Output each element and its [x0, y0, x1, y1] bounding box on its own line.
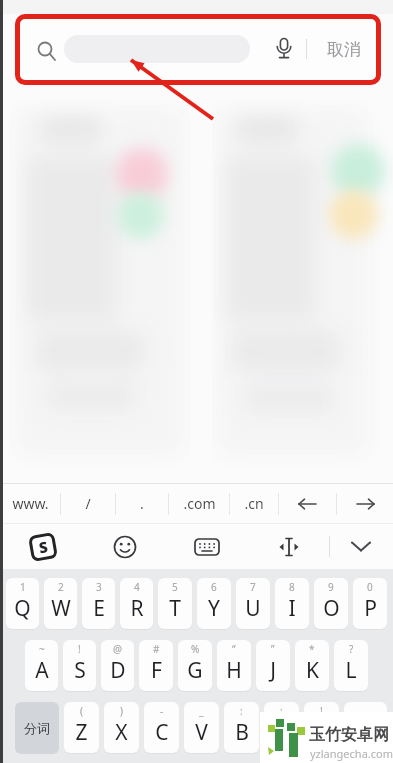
staticText: 4 [134, 580, 140, 594]
staticText: ( [80, 704, 83, 718]
staticText: G [187, 656, 203, 685]
staticText: _ [199, 704, 204, 718]
button[interactable]: / [61, 484, 115, 523]
staticText: O [323, 594, 340, 623]
button[interactable] [64, 35, 250, 63]
staticText: X [115, 718, 128, 747]
button[interactable]: ” [256, 640, 290, 691]
staticText: V [195, 718, 208, 747]
button[interactable]: 取消 [318, 34, 370, 64]
staticText: .com [183, 494, 216, 513]
staticText: Q [14, 594, 31, 623]
staticText: “ [232, 642, 236, 656]
staticText: # [153, 642, 160, 656]
button[interactable]: “ [217, 640, 251, 691]
staticText: 5 [172, 580, 178, 594]
staticText: I [288, 594, 296, 623]
button[interactable] [279, 484, 336, 523]
button[interactable]: 分词 [15, 702, 59, 754]
staticText: 分词 [24, 720, 50, 736]
button[interactable]: - [144, 702, 179, 753]
staticText: A [35, 656, 49, 685]
button[interactable]: 3 [82, 578, 115, 629]
button[interactable]: _ [184, 702, 219, 753]
button[interactable]: 0 [353, 578, 387, 629]
staticText: .cn [244, 494, 264, 513]
button[interactable]: S [28, 532, 58, 562]
button[interactable] [273, 37, 295, 59]
staticText: : [240, 704, 243, 718]
staticText: W [51, 594, 71, 623]
button[interactable] [194, 538, 220, 556]
button[interactable] [113, 535, 137, 559]
staticText: * [309, 642, 315, 656]
button[interactable]: ( [64, 702, 99, 753]
staticText: L [345, 656, 357, 685]
staticText: 取消 [327, 39, 361, 60]
button[interactable]: % [178, 640, 212, 691]
button[interactable]: ! [63, 640, 96, 691]
button[interactable] [278, 537, 300, 557]
button[interactable] [350, 540, 372, 553]
staticText: S [37, 536, 50, 558]
button[interactable] [15, 14, 381, 85]
button[interactable]: * [295, 640, 329, 691]
staticText: - [160, 704, 164, 718]
staticText: 7 [250, 580, 256, 594]
staticText: T [169, 594, 181, 623]
staticText: 3 [96, 580, 102, 594]
staticText: 0 [367, 580, 373, 594]
staticText: ~ [39, 642, 45, 656]
staticText: 6 [211, 580, 217, 594]
button[interactable]: ⌫ [344, 702, 387, 753]
button[interactable]: 4 [120, 578, 153, 629]
staticText: yzlangecha.com [310, 746, 393, 761]
button[interactable] [337, 484, 393, 523]
button[interactable]: www. [0, 484, 60, 523]
staticText: S [74, 656, 86, 685]
staticText: ” [271, 642, 275, 656]
button[interactable]: 7 [236, 578, 270, 629]
button[interactable]: 9 [314, 578, 348, 629]
staticText: M [312, 718, 332, 747]
button[interactable]: 8 [275, 578, 309, 629]
staticText: ! [78, 642, 81, 656]
staticText: ; [280, 704, 283, 718]
button[interactable]: ? [334, 640, 368, 691]
staticText: 9 [328, 580, 334, 594]
staticText: . [140, 494, 144, 513]
staticText: D [110, 656, 126, 685]
staticText: K [306, 656, 319, 685]
button[interactable]: ) [104, 702, 139, 753]
staticText: C [155, 718, 169, 747]
button[interactable]: . [116, 484, 168, 523]
staticText: ⌫ [354, 718, 377, 737]
staticText: F [151, 656, 162, 685]
staticText: ) [120, 704, 123, 718]
button[interactable]: ! [304, 702, 339, 753]
button[interactable]: 6 [197, 578, 231, 629]
button[interactable]: @ [101, 640, 134, 691]
staticText: N [274, 718, 290, 747]
button[interactable]: ; [264, 702, 299, 753]
button[interactable]: 2 [44, 578, 77, 629]
staticText: 玉竹安卓网 [309, 725, 389, 745]
staticText: Y [208, 594, 220, 623]
button[interactable]: .cn [230, 484, 278, 523]
staticText: ! [320, 704, 323, 718]
button[interactable]: ~ [25, 640, 58, 691]
staticText: J [270, 656, 276, 685]
staticText: 1 [20, 580, 26, 594]
button[interactable]: 5 [158, 578, 192, 629]
staticText: U [245, 594, 261, 623]
button[interactable]: .com [169, 484, 229, 523]
staticText: www. [12, 494, 49, 513]
staticText: E [93, 594, 105, 623]
button[interactable]: # [139, 640, 173, 691]
staticText: Z [75, 718, 88, 747]
staticText: P [364, 594, 377, 623]
button[interactable]: : [224, 702, 259, 753]
staticText: R [130, 594, 144, 623]
button[interactable]: 1 [6, 578, 39, 629]
staticText: % [191, 642, 200, 656]
